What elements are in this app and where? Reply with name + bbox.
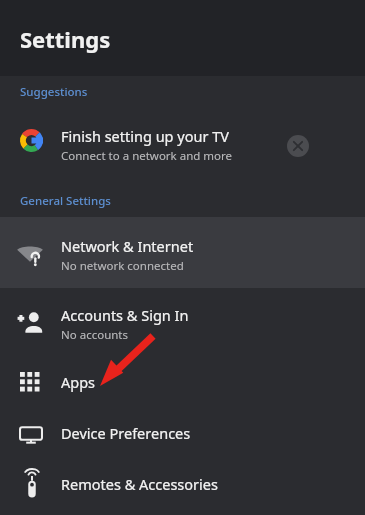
staticText: Settings	[20, 24, 111, 54]
button[interactable]: Accounts & Sign In	[0, 292, 365, 354]
staticText: Accounts & Sign In	[61, 305, 189, 325]
button[interactable]: Network & Internet	[0, 217, 365, 288]
button[interactable]: Settings	[20, 24, 111, 54]
button[interactable]: Remotes & Accessories	[0, 460, 365, 510]
staticText: Network & Internet	[61, 236, 194, 256]
staticText: Apps	[61, 372, 96, 392]
staticText: No accounts	[61, 327, 129, 343]
staticText: No network connected	[61, 258, 184, 274]
staticText: Connect to a network and more	[61, 148, 233, 164]
button[interactable]: Device Preferences	[0, 409, 365, 459]
button[interactable]: Apps	[0, 358, 365, 408]
button[interactable]: Finish setting up your TV	[0, 112, 365, 180]
staticText: Device Preferences	[61, 423, 191, 443]
staticText: Finish setting up your TV	[61, 126, 229, 146]
staticText: Suggestions	[20, 84, 88, 100]
button[interactable]: Dismiss suggestion	[287, 135, 309, 157]
staticText: Remotes & Accessories	[61, 474, 218, 494]
staticText: General Settings	[20, 193, 111, 209]
